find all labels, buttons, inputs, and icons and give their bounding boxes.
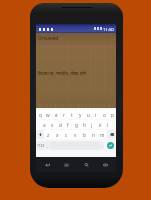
button[interactable]: Recent apps [58,158,74,171]
staticText: , [47,143,49,148]
staticText: z [47,132,50,138]
button[interactable]: r [60,110,68,119]
button[interactable]: Hide keyboard [39,158,55,171]
button[interactable]: Shift [36,130,44,139]
button[interactable]: m [98,130,107,139]
button[interactable]: Period [100,141,104,150]
button[interactable]: ?123 [36,141,45,150]
staticText: l [107,122,109,128]
staticText: j [91,122,93,128]
button[interactable]: w [44,110,52,119]
button[interactable]: h [80,120,88,129]
button[interactable]: j [88,120,96,129]
button[interactable]: i [92,110,100,119]
button[interactable]: n [89,130,98,139]
button[interactable]: q [36,110,44,119]
staticText: y [79,112,82,118]
button[interactable]: s [48,120,56,129]
button[interactable]: f [64,120,72,129]
staticText: e [55,112,58,118]
staticText: t [71,112,73,118]
staticText: m [100,132,105,138]
button[interactable]: Enter [107,142,114,149]
staticText: n [92,132,95,138]
button[interactable]: e [52,110,60,119]
button[interactable]: t [68,110,76,119]
button[interactable]: o [100,110,108,119]
staticText: विजया या, भारतीय, लेखा, होंगे [38,70,87,76]
button[interactable]: u [84,110,92,119]
button[interactable]: z [44,130,53,139]
staticText: g [75,122,78,128]
staticText: w [46,112,50,118]
staticText: ?123 [37,143,45,148]
button[interactable]: d [56,120,64,129]
button[interactable]: Backspace [107,130,116,139]
staticText: 11:50 [103,27,114,33]
staticText: h [83,122,86,128]
staticText: x [56,132,59,138]
button[interactable]: Comma [45,141,50,150]
staticText: q [39,112,42,118]
button[interactable]: k [96,120,104,129]
staticText: c [65,132,68,138]
staticText: s [51,122,54,128]
staticText: v [74,132,77,138]
button[interactable]: p [108,110,116,119]
staticText: b [83,132,86,138]
staticText: r [63,112,65,118]
button[interactable]: c [62,130,71,139]
button[interactable]: g [72,120,80,129]
staticText: a [43,122,46,128]
button[interactable]: Search [78,158,94,171]
button[interactable]: l [104,120,112,129]
staticText: o [103,112,106,118]
staticText: p [111,112,114,118]
staticText: d [59,122,62,128]
button[interactable]: a [40,120,48,129]
button[interactable]: x [53,130,62,139]
staticText: Unsaved [38,35,59,42]
button[interactable]: v [71,130,80,139]
button[interactable]: y [76,110,84,119]
button[interactable]: b [80,130,89,139]
staticText: f [67,122,69,128]
staticText: k [99,122,102,128]
button[interactable]: Camera [97,158,113,171]
staticText: i [95,112,97,118]
staticText: u [87,112,90,118]
staticText: . [101,143,103,148]
